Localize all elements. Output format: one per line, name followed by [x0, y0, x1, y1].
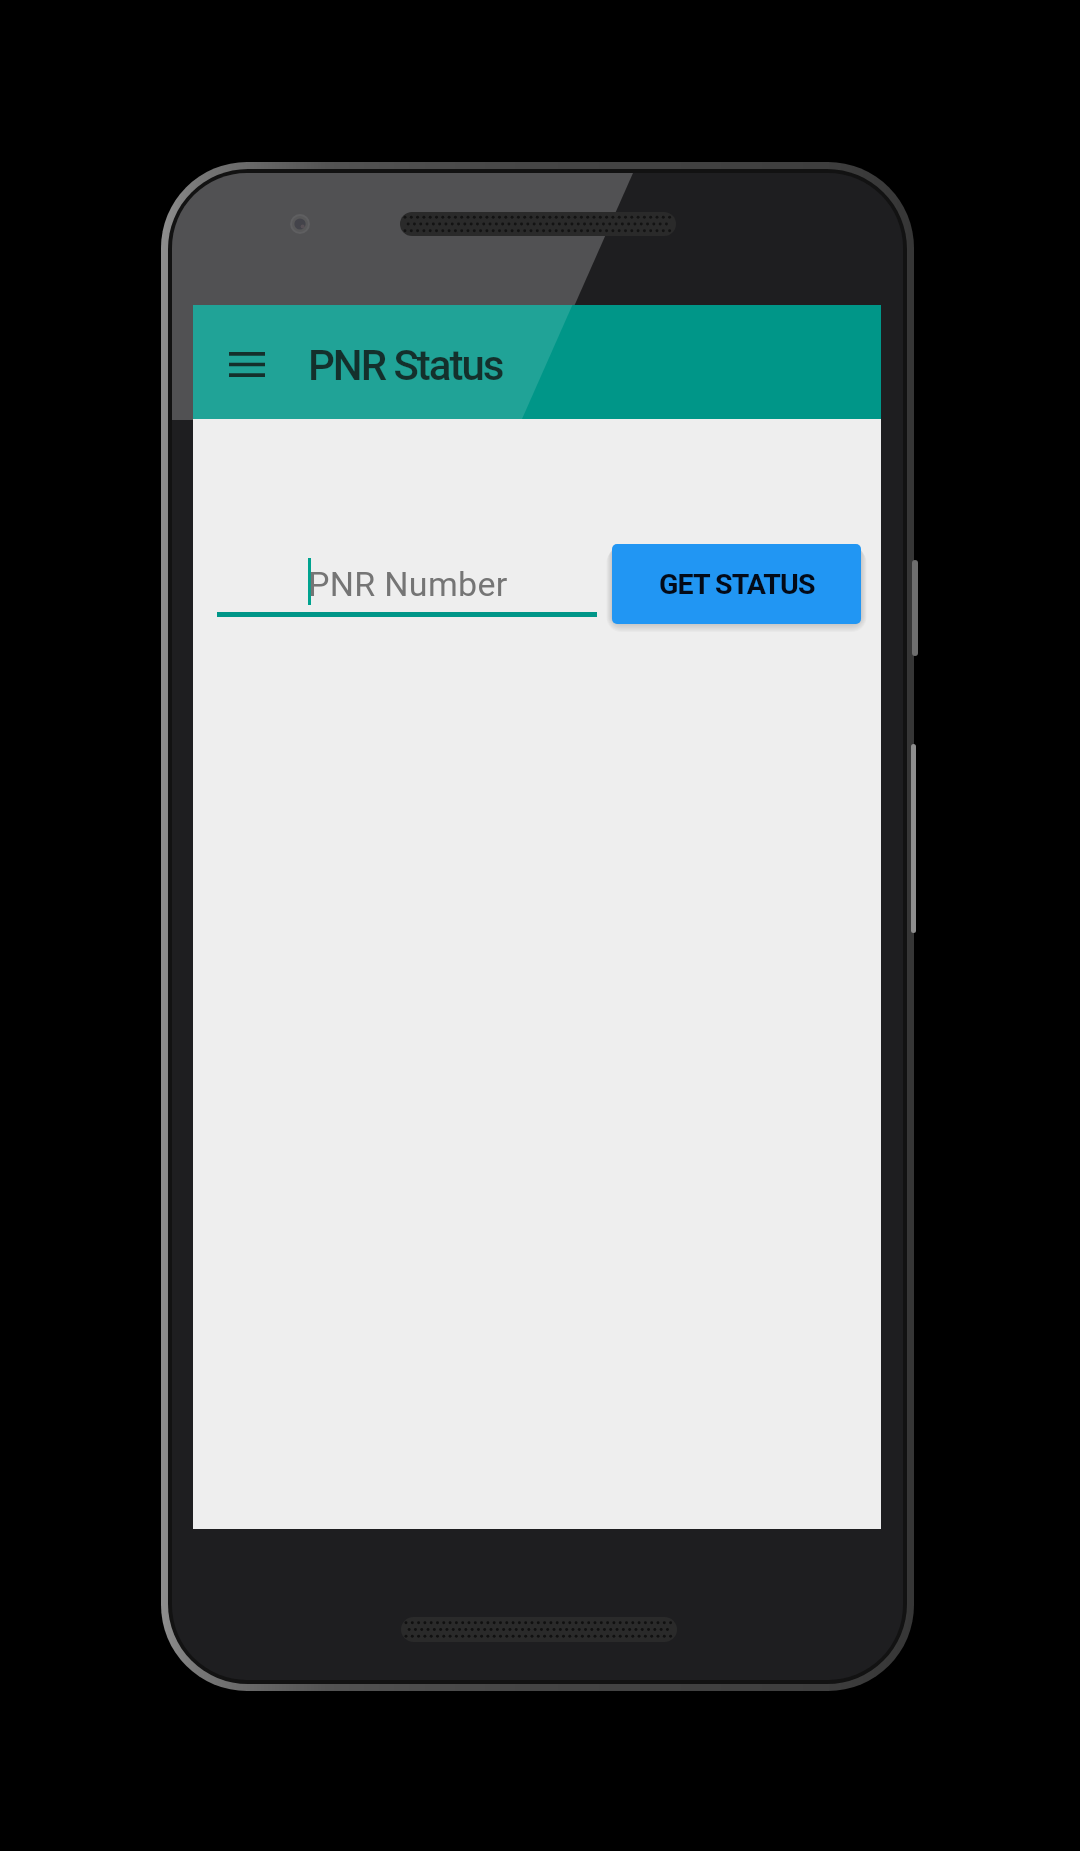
staticText: PNR Number: [308, 564, 508, 604]
button[interactable]: GET STATUS: [612, 544, 861, 624]
staticText: PNR Status: [308, 341, 503, 390]
staticText: GET STATUS: [659, 568, 815, 601]
button[interactable]: PNR Number input field: [217, 541, 597, 617]
button[interactable]: Open navigation drawer: [211, 328, 283, 400]
